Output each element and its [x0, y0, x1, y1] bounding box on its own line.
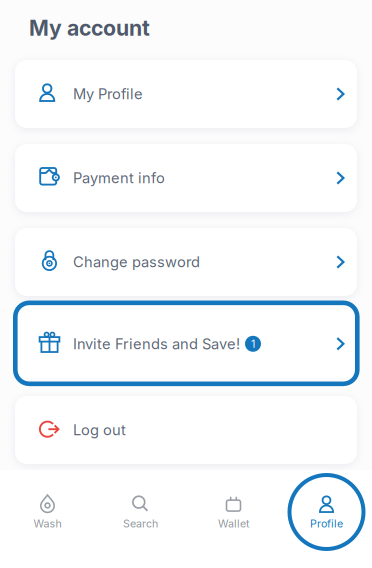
button[interactable]: Wallet	[187, 491, 280, 533]
staticText: Change password	[73, 253, 200, 271]
button[interactable]: Change password	[15, 228, 357, 296]
staticText: Wallet	[218, 517, 249, 530]
staticText: My Profile	[73, 85, 143, 103]
button[interactable]: Invite Friends and Save!	[15, 301, 357, 386]
button[interactable]: My Profile	[15, 60, 357, 128]
staticText: Log out	[73, 421, 126, 439]
button[interactable]: Log out	[15, 396, 357, 464]
staticText: 1	[251, 337, 255, 350]
staticText: Profile	[310, 517, 343, 530]
button[interactable]: Payment info	[15, 144, 357, 212]
staticText: Wash	[33, 517, 61, 530]
staticText: Invite Friends and Save!	[73, 335, 240, 353]
staticText: Search	[123, 517, 158, 530]
button[interactable]: Profile	[280, 475, 372, 549]
button[interactable]: Wash	[1, 491, 94, 533]
staticText: My account	[29, 15, 150, 41]
button[interactable]: Search	[94, 491, 187, 533]
staticText: Payment info	[73, 169, 165, 187]
